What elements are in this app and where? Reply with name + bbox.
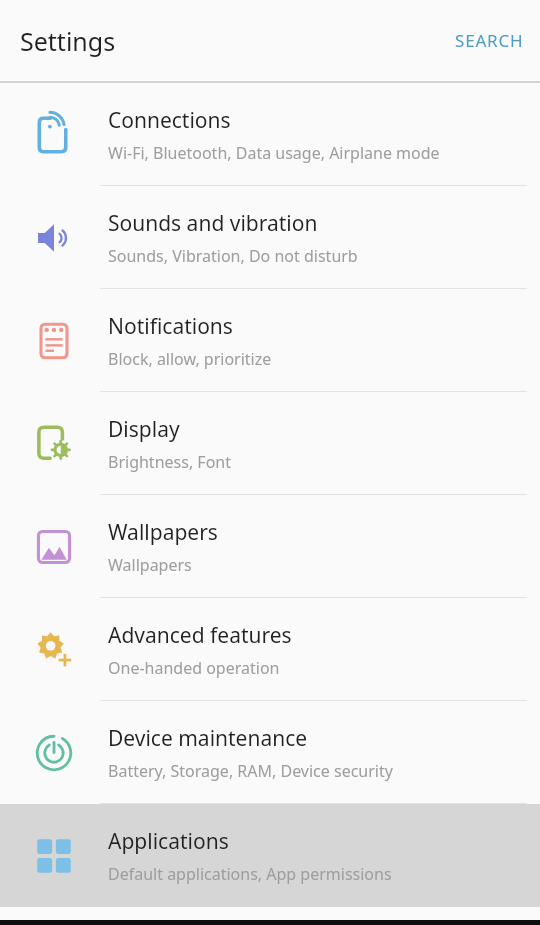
button[interactable]: Wallpapers <box>0 495 540 598</box>
staticText: Block, allow, prioritize <box>108 348 272 370</box>
staticText: Brightness, Font <box>108 451 231 473</box>
staticText: Sounds, Vibration, Do not disturb <box>108 245 358 267</box>
button[interactable]: Device maintenance <box>0 701 540 804</box>
button[interactable]: Sounds and vibration <box>0 186 540 289</box>
staticText: Settings <box>20 24 116 58</box>
staticText: Device maintenance <box>108 724 308 753</box>
button[interactable]: Applications <box>0 804 540 907</box>
button[interactable]: SEARCH <box>439 13 540 68</box>
staticText: Wallpapers <box>108 554 192 576</box>
staticText: Sounds and vibration <box>108 209 318 238</box>
staticText: Applications <box>108 827 229 856</box>
button[interactable]: Connections <box>0 83 540 186</box>
staticText: Default applications, App permissions <box>108 863 392 885</box>
staticText: Notifications <box>108 312 233 341</box>
button[interactable]: Advanced features <box>0 598 540 701</box>
button[interactable]: Display <box>0 392 540 495</box>
staticText: Battery, Storage, RAM, Device security <box>108 760 393 782</box>
staticText: Wallpapers <box>108 518 218 547</box>
button[interactable]: Notifications <box>0 289 540 392</box>
staticText: Wi-Fi, Bluetooth, Data usage, Airplane m… <box>108 142 440 164</box>
staticText: SEARCH <box>455 29 524 52</box>
staticText: Connections <box>108 106 231 135</box>
staticText: Display <box>108 415 180 444</box>
staticText: One-handed operation <box>108 657 280 679</box>
staticText: Advanced features <box>108 621 292 650</box>
